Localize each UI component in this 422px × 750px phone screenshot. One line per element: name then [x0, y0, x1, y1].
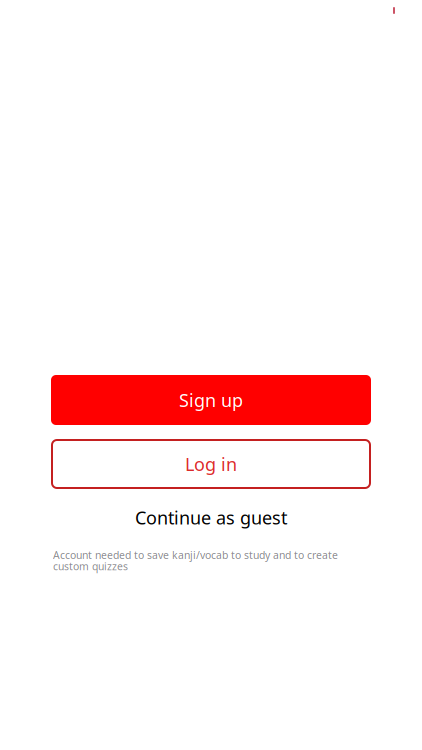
button[interactable]: Log in: [51, 439, 371, 489]
staticText: Log in: [185, 452, 237, 476]
button[interactable]: Continue as guest: [0, 506, 422, 529]
staticText: Sign up: [179, 388, 243, 412]
staticText: Continue as guest: [135, 505, 287, 530]
button[interactable]: Sign up: [51, 375, 371, 425]
staticText: Account needed to save kanji/vocab to st…: [53, 548, 338, 562]
staticText: custom quizzes: [53, 559, 128, 573]
